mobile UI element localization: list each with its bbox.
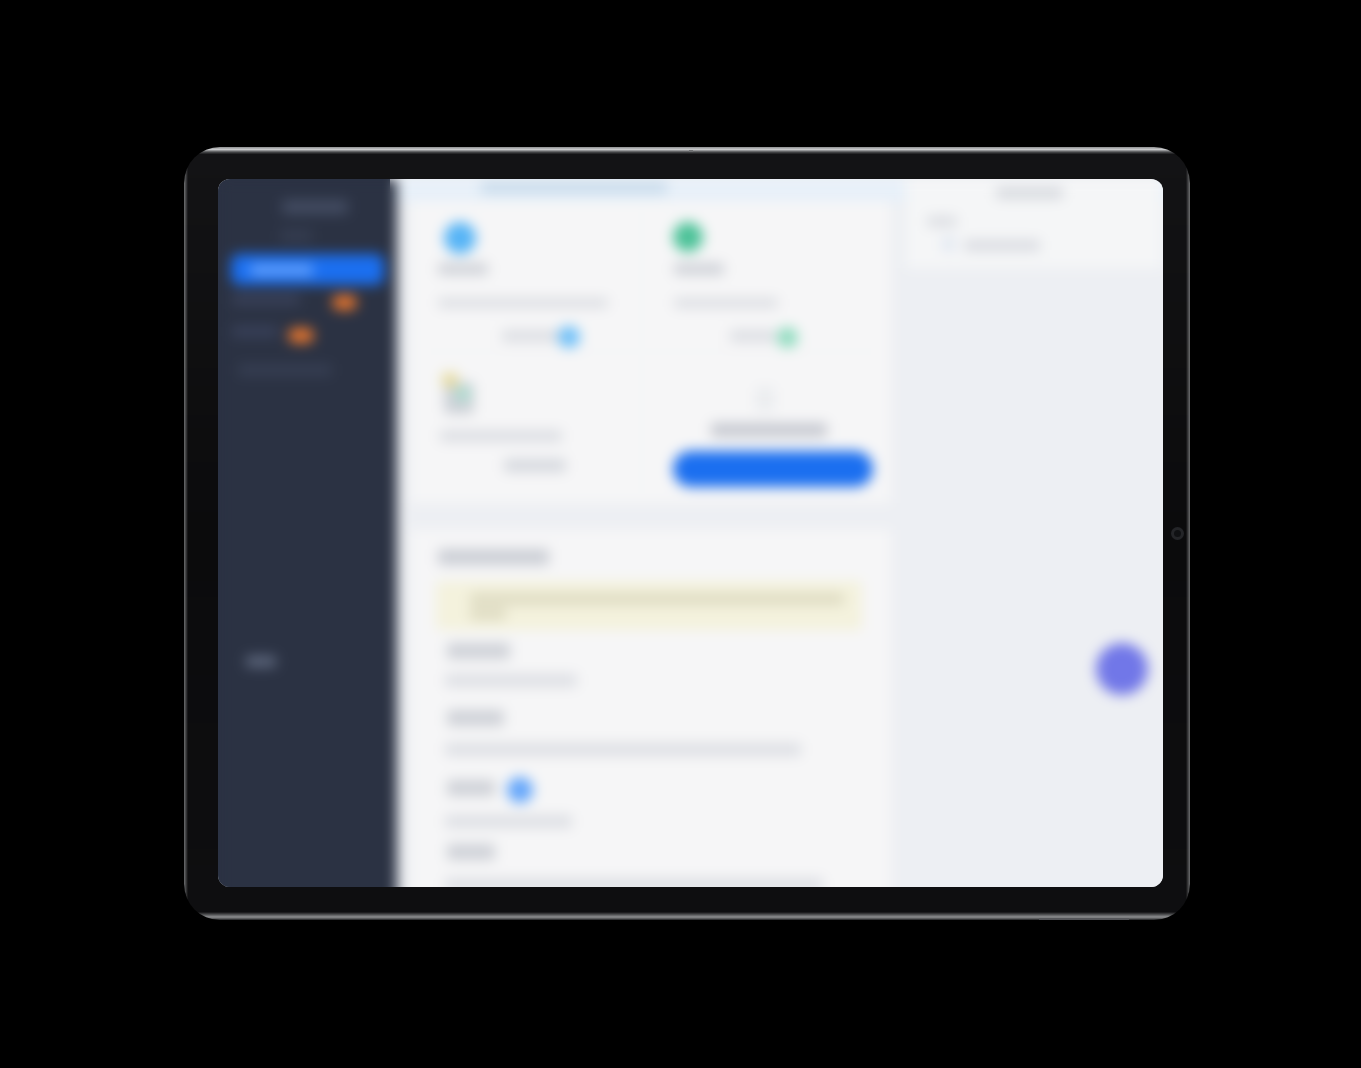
button[interactable]	[231, 254, 384, 285]
button[interactable]	[411, 844, 891, 887]
button[interactable]	[936, 233, 1136, 259]
button[interactable]: Help	[1096, 643, 1148, 695]
button[interactable]	[411, 643, 891, 703]
button[interactable]	[411, 780, 891, 840]
button[interactable]	[226, 289, 394, 315]
button[interactable]	[673, 451, 873, 487]
button[interactable]	[226, 322, 394, 348]
button[interactable]	[411, 710, 891, 770]
